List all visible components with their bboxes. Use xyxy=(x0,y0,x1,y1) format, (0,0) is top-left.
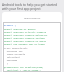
staticText: class MainActivity xyxy=(4,47,28,50)
staticText: import androidx.compose.material3 xyxy=(4,34,48,37)
staticText: Android tools to help you get started wi… xyxy=(2,3,62,11)
staticText: override fun xyxy=(4,50,23,53)
staticText: import androidx.compose.runtime xyxy=(4,37,45,40)
staticText: import android.os.Bundle xyxy=(4,28,36,31)
staticText: import androidx.activity.Compose xyxy=(4,31,46,34)
staticText: import androidx.compose.ui.Modif xyxy=(4,40,46,43)
staticText: plugins { xyxy=(4,24,16,27)
staticText: import com.example.app.ui.theme xyxy=(4,43,45,46)
staticText: } xyxy=(4,62,8,65)
staticText: @Composable fun Greeting(name) xyxy=(4,66,44,69)
staticText: MainActivity.kt xyxy=(24,16,41,19)
staticText: super.onCreate xyxy=(4,53,25,56)
staticText: setContent xyxy=(4,56,20,59)
staticText: Text(text = "Hello $name") xyxy=(4,69,41,72)
staticText: AppTheme xyxy=(4,59,18,62)
button[interactable]: plugins { xyxy=(3,22,61,72)
